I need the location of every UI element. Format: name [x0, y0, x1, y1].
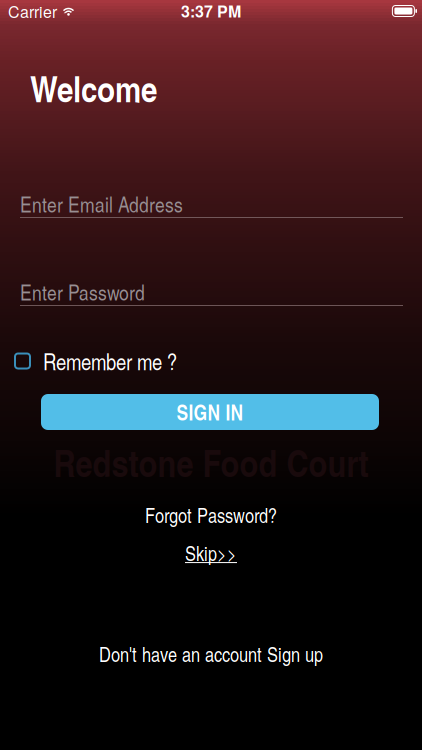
button[interactable]: Enter Email Address: [20, 194, 403, 218]
staticText: Carrier: [8, 0, 57, 22]
button[interactable]: Don't have an account Sign up: [99, 640, 323, 668]
staticText: 3:37 PM: [181, 0, 241, 22]
staticText: Remember me ?: [43, 345, 177, 377]
button[interactable]: Forgot Password?: [145, 501, 277, 529]
staticText: SIGN IN: [176, 397, 243, 427]
staticText: Welcome: [30, 63, 157, 113]
button[interactable]: Skip>>: [185, 539, 237, 567]
staticText: Enter Password: [20, 277, 145, 307]
staticText: Redstone Food Court: [53, 436, 368, 488]
staticText: Skip>>: [185, 539, 237, 567]
button[interactable]: Enter Password: [20, 282, 403, 306]
button[interactable]: SIGN IN: [41, 394, 379, 430]
staticText: Don't have an account Sign up: [99, 640, 323, 668]
staticText: Enter Email Address: [20, 189, 183, 219]
button[interactable]: Remember me: [0, 352, 422, 370]
staticText: Forgot Password?: [145, 501, 277, 529]
